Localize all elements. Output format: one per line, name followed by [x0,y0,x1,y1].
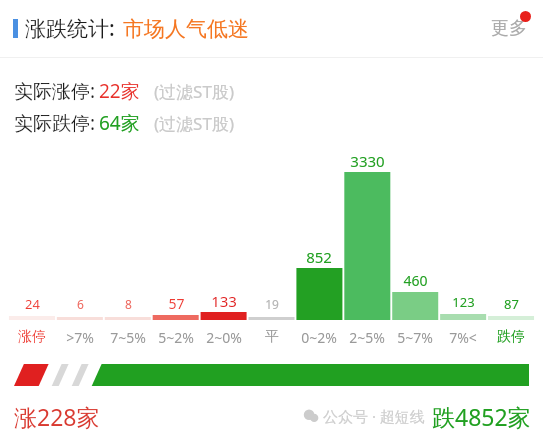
button[interactable]: 更多 [485,11,533,46]
staticText: 5~7% [397,328,433,347]
staticText: 24 [25,295,40,313]
button[interactable]: 57 [152,294,200,313]
staticText: 0~2% [301,328,337,347]
staticText: 8 [125,296,132,312]
button[interactable]: 涨停 [8,328,56,346]
staticText: 2~0% [206,328,242,347]
staticText: 市场人气低迷 [123,16,249,42]
staticText: 3330 [350,151,385,171]
button[interactable]: 133 [200,291,248,311]
staticText: 64家 [99,110,140,136]
staticText: 7~5% [110,328,146,347]
button[interactable]: 8 [104,296,152,312]
button[interactable]: 2~5% [343,328,391,347]
staticText: 5~2% [158,328,194,347]
staticText: 6 [77,296,84,312]
button[interactable]: 123 [439,293,487,311]
button[interactable]: 涨跌统计: [13,14,249,43]
staticText: 实际跌停: [14,110,96,136]
staticText: 852 [306,247,332,267]
button[interactable]: 6 [56,296,104,312]
button[interactable]: 平 [248,328,296,346]
staticText: 87 [504,295,519,313]
button[interactable]: 2~0% [200,328,248,347]
staticText: 123 [452,293,475,311]
button[interactable]: 852 [295,247,343,267]
staticText: 平 [265,328,279,346]
button[interactable]: 跌4852家 [432,401,531,432]
staticText: 22家 [99,78,140,104]
button[interactable] [14,364,529,386]
staticText: 涨跌统计: [25,14,115,43]
staticText: 19 [265,296,279,312]
staticText: 7%< [449,328,477,347]
button[interactable]: 7~5% [104,328,152,347]
staticText: 跌停 [497,328,525,346]
button[interactable]: >7% [56,328,104,347]
button[interactable]: 3330 [343,151,391,171]
staticText: 133 [211,291,237,311]
staticText: 460 [403,271,428,290]
button[interactable]: 跌停 [487,328,535,346]
button[interactable]: 5~2% [152,328,200,347]
button[interactable]: 涨228家 [14,401,100,432]
staticText: (过滤ST股) [154,112,234,135]
staticText: 2~5% [349,328,385,347]
button[interactable]: 19 [248,296,296,312]
staticText: >7% [66,328,94,347]
staticText: (过滤ST股) [154,80,234,103]
button[interactable]: 7%< [439,328,487,347]
staticText: 公众号 · 超短线 [323,406,425,426]
button[interactable]: 24 [8,295,56,313]
button[interactable]: 87 [487,295,535,313]
staticText: 涨停 [18,328,46,346]
button[interactable]: 460 [391,271,439,290]
button[interactable]: 5~7% [391,328,439,347]
staticText: 实际涨停: [14,78,96,104]
button[interactable]: 0~2% [295,328,343,347]
staticText: 更多 [491,17,527,40]
staticText: 57 [168,294,185,313]
